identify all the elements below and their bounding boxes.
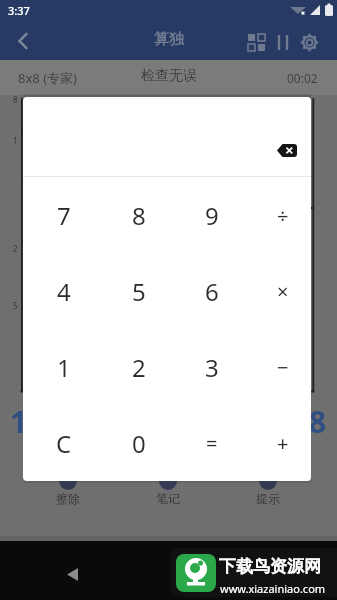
button[interactable]: 6 bbox=[177, 253, 247, 329]
button[interactable]: 1 bbox=[29, 329, 99, 405]
staticText: 9 bbox=[205, 199, 219, 232]
button[interactable]: 3 bbox=[177, 329, 247, 405]
button[interactable]: = bbox=[177, 405, 247, 481]
button[interactable] bbox=[296, 28, 322, 56]
button[interactable]: 4 bbox=[29, 253, 99, 329]
button[interactable] bbox=[271, 28, 295, 56]
button[interactable]: ÷ bbox=[248, 177, 311, 253]
button[interactable]: 擦除 bbox=[38, 490, 98, 507]
button[interactable]: 8 bbox=[104, 177, 174, 253]
button[interactable]: C bbox=[29, 405, 99, 481]
staticText: 8x8 (专家) bbox=[18, 69, 77, 87]
button[interactable] bbox=[8, 26, 38, 56]
button[interactable]: 2 bbox=[104, 329, 174, 405]
staticText: − bbox=[277, 354, 289, 381]
staticText: 5 bbox=[13, 300, 18, 311]
button[interactable]: 0 bbox=[104, 405, 174, 481]
staticText: 7 bbox=[57, 199, 71, 232]
staticText: 8 bbox=[132, 199, 146, 232]
staticText: 00:02 bbox=[287, 70, 318, 86]
staticText: 4 bbox=[57, 275, 71, 308]
button[interactable]: + bbox=[248, 405, 311, 481]
staticText: + bbox=[277, 430, 289, 457]
button[interactable]: 5 bbox=[104, 253, 174, 329]
staticText: 笔记 bbox=[156, 491, 180, 506]
staticText: 1 bbox=[13, 135, 18, 146]
button[interactable]: 下载鸟资源网 bbox=[170, 548, 337, 597]
button[interactable]: 笔记 bbox=[138, 490, 198, 507]
staticText: 6 bbox=[205, 275, 219, 308]
staticText: = bbox=[206, 430, 218, 457]
staticText: 8 bbox=[309, 401, 327, 442]
staticText: 下载鸟资源网 bbox=[219, 556, 321, 577]
staticText: ÷ bbox=[277, 202, 289, 229]
staticText: 检查无误 bbox=[141, 67, 197, 85]
staticText: 提示 bbox=[256, 491, 280, 506]
button[interactable] bbox=[271, 137, 303, 164]
staticText: 1 bbox=[57, 351, 71, 384]
staticText: 5 bbox=[132, 275, 146, 308]
staticText: 1 bbox=[10, 401, 28, 442]
staticText: 2 bbox=[132, 351, 146, 384]
button[interactable] bbox=[243, 28, 269, 56]
staticText: 2 bbox=[13, 243, 18, 254]
staticText: 3:37 bbox=[8, 3, 30, 18]
button[interactable]: 7 bbox=[29, 177, 99, 253]
staticText: × bbox=[277, 278, 289, 305]
staticText: 算独 bbox=[154, 30, 184, 49]
button[interactable] bbox=[52, 558, 92, 590]
staticText: 0 bbox=[132, 427, 146, 460]
staticText: 3 bbox=[205, 351, 219, 384]
button[interactable]: 9 bbox=[177, 177, 247, 253]
button[interactable]: 提示 bbox=[238, 490, 298, 507]
button[interactable]: − bbox=[248, 329, 311, 405]
staticText: C bbox=[56, 427, 72, 460]
button[interactable]: × bbox=[248, 253, 311, 329]
staticText: 擦除 bbox=[56, 491, 80, 506]
staticText: www.xiazainiao.com bbox=[220, 581, 326, 596]
staticText: 8 bbox=[13, 94, 18, 105]
